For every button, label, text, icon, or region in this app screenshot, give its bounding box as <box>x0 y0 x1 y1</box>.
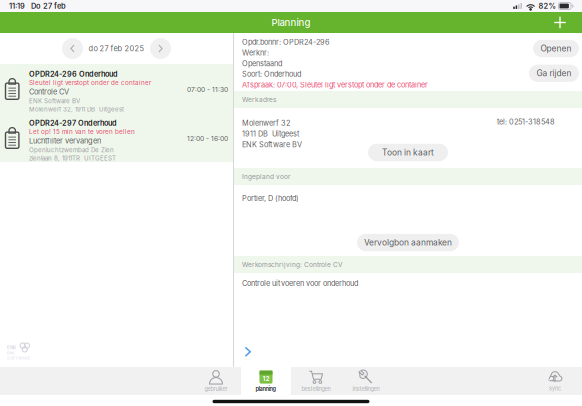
staticText: Planning <box>271 17 310 28</box>
staticText: Soort: Onderhoud <box>242 70 301 79</box>
staticText: Molenwerf 32, 1911 DB Uitgeest <box>29 106 124 113</box>
staticText: instellingen <box>352 386 379 392</box>
staticText: Openluchtzwembad De Zien <box>29 146 114 154</box>
button[interactable]: OPDR24-297 Onderhoud <box>0 113 233 162</box>
staticText: Let op! 15 min van te voren bellen <box>29 128 135 136</box>
staticText: ENK Software BV <box>29 97 80 105</box>
button[interactable]: bestellingen <box>291 367 341 395</box>
staticText: Controle CV <box>29 87 69 96</box>
staticText: 12:00 - 16:00 <box>187 134 228 143</box>
button[interactable]: 12 <box>241 367 291 395</box>
button[interactable]: Vervolgbon aanmaken <box>357 234 459 251</box>
staticText: Openen <box>540 43 571 54</box>
button[interactable]: Nieuwe opdracht <box>550 12 570 33</box>
button[interactable]: Openen <box>533 40 579 57</box>
button[interactable]: gebruiker <box>191 367 241 395</box>
button[interactable]: sync <box>530 367 580 395</box>
staticText: Opdr.bonnr: OPDR24-296 <box>242 38 330 47</box>
staticText: Werkomschrijving: Controle CV <box>242 260 343 268</box>
button[interactable]: Toon lijst <box>241 343 255 361</box>
staticText: Werkadres <box>242 95 276 103</box>
staticText: Luchtfilter vervangen <box>29 136 101 145</box>
staticText: Toon in kaart <box>382 147 434 158</box>
staticText: sync <box>549 385 561 392</box>
staticText: Portier, D (hoofd) <box>242 194 299 203</box>
staticText: do 27 feb 2025 <box>88 44 144 53</box>
staticText: Werknr: <box>242 48 269 57</box>
staticText: ENK SOFTWARE <box>7 351 30 360</box>
staticText: zienlaan 8, 1911TR UITGEEST <box>29 155 116 162</box>
staticText: OPDR24-297 Onderhoud <box>29 119 117 128</box>
staticText: 12 <box>262 374 269 383</box>
staticText: Sleutel ligt verstopt onder de container <box>29 79 151 87</box>
button[interactable]: OPDR24-296 Onderhoud <box>0 64 233 113</box>
staticText: Afspraak: 07:00, Sleutel ligt verstopt o… <box>242 80 428 89</box>
button[interactable]: Toon in kaart <box>368 144 448 161</box>
staticText: Ingepland voor <box>242 172 290 180</box>
staticText: Molenwerf 32 <box>242 119 290 128</box>
staticText: OPDR24-296 Onderhoud <box>29 70 118 79</box>
button[interactable]: Vorige dag <box>62 38 83 59</box>
button[interactable]: Ga rijden <box>529 64 579 82</box>
staticText: tel: 0251-318548 <box>497 117 555 126</box>
staticText: gebruiker <box>204 386 227 392</box>
staticText: 1911 DB Uitgeest <box>242 129 299 138</box>
staticText: 07:00 - 11:30 <box>187 85 228 94</box>
staticText: Ga rijden <box>536 68 571 78</box>
staticText: 11:19 Do 27 feb <box>9 1 66 10</box>
staticText: 82% <box>539 1 556 10</box>
staticText: ENK <box>7 345 16 350</box>
staticText: planning <box>255 386 276 392</box>
button[interactable]: instellingen <box>341 367 391 395</box>
button[interactable]: Volgende dag <box>150 38 171 59</box>
staticText: bestellingen <box>301 386 330 392</box>
staticText: Vervolgbon aanmaken <box>364 237 452 248</box>
staticText: Openstaand <box>242 59 282 68</box>
staticText: Controle uitvoeren voor onderhoud <box>242 279 358 288</box>
staticText: ENK Software BV <box>242 140 302 149</box>
